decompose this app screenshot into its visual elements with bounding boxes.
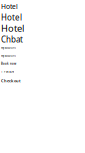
staticText: Hotel — [1, 2, 18, 11]
staticText: Check out — [1, 78, 21, 83]
staticText: 1 PERSON — [1, 70, 14, 73]
staticText: My Account — [1, 46, 16, 49]
staticText: Book now — [1, 62, 16, 65]
staticText: Hotel — [1, 22, 24, 34]
staticText: Chbat — [1, 34, 23, 45]
staticText: Hotel — [1, 12, 22, 23]
staticText: My Account — [1, 54, 16, 57]
